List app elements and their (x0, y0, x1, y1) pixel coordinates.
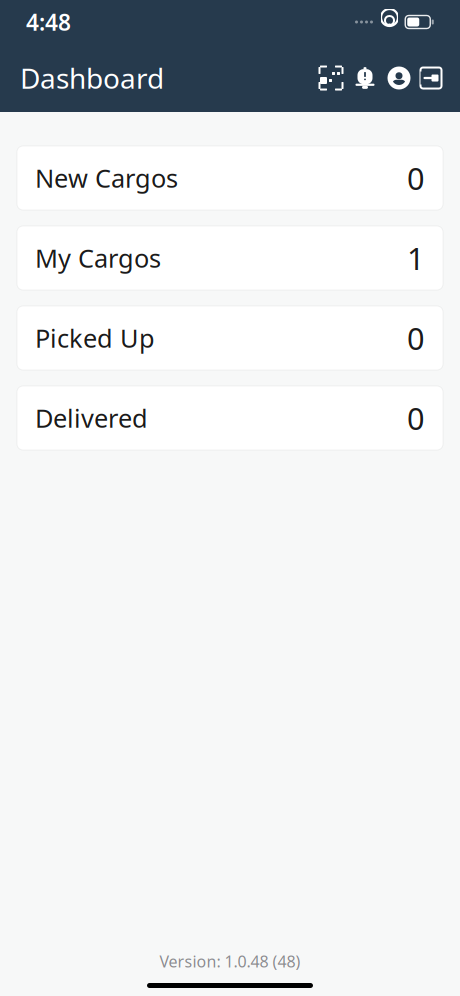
staticText: 0 (407, 398, 425, 438)
staticText: Picked Up (35, 321, 155, 355)
staticText: 0 (407, 318, 425, 358)
button[interactable]: Profile (382, 56, 416, 100)
button[interactable]: Notifications (348, 56, 382, 100)
staticText: Delivered (35, 401, 148, 435)
button[interactable]: Picked Up (17, 306, 443, 370)
button[interactable]: Scan code (314, 56, 348, 100)
button[interactable]: My Cargos (17, 226, 443, 290)
staticText: 0 (407, 158, 425, 198)
button[interactable]: New Cargos (17, 146, 443, 210)
staticText: 1 (407, 238, 425, 278)
staticText: Dashboard (20, 59, 164, 97)
staticText: New Cargos (35, 161, 178, 195)
button[interactable]: Delivered (17, 386, 443, 450)
staticText: My Cargos (35, 241, 161, 275)
staticText: Version: 1.0.48 (48) (159, 951, 300, 972)
staticText: 4:48 (26, 7, 71, 37)
button[interactable]: Log out (416, 56, 446, 100)
